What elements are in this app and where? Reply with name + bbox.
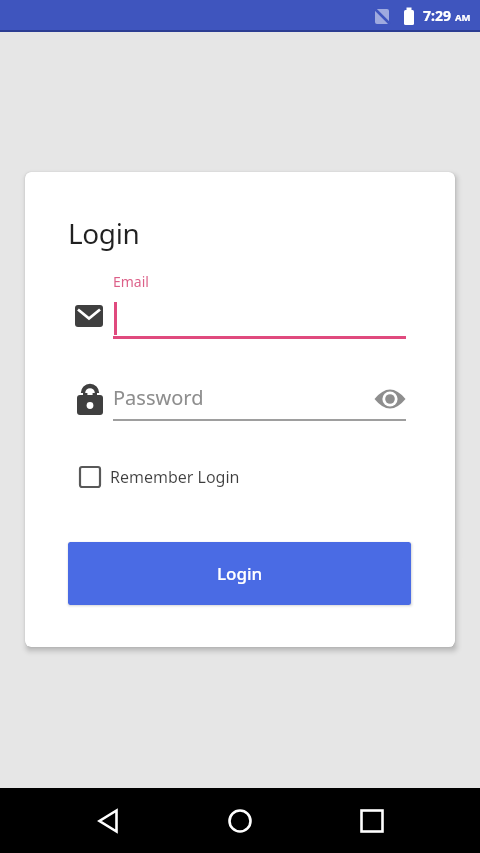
button[interactable]: Remember Login <box>79 466 240 488</box>
staticText: AM <box>455 11 471 24</box>
button[interactable] <box>113 380 406 420</box>
staticText: Password <box>113 384 204 411</box>
button[interactable]: Login <box>68 542 411 605</box>
button[interactable] <box>216 797 264 845</box>
button[interactable] <box>113 300 406 338</box>
button[interactable] <box>84 797 132 845</box>
button[interactable] <box>366 379 414 419</box>
staticText: 7:29 <box>423 6 451 25</box>
button[interactable] <box>348 797 396 845</box>
staticText: Login <box>68 214 140 252</box>
staticText: Email <box>113 272 149 291</box>
staticText: Login <box>217 562 263 585</box>
staticText: Remember Login <box>110 466 240 488</box>
